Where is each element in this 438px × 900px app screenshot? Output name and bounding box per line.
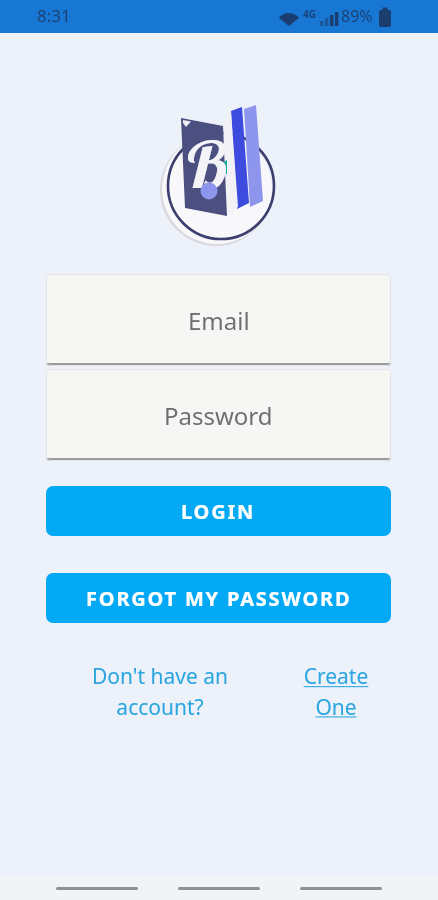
- staticText: 89%: [341, 5, 373, 27]
- button[interactable]: [56, 883, 138, 893]
- button[interactable]: LOGIN: [46, 486, 391, 536]
- staticText: 4G: [303, 7, 316, 21]
- staticText: B: [179, 124, 223, 204]
- button[interactable]: Create One: [291, 662, 381, 721]
- staticText: FORGOT MY PASSWORD: [86, 585, 352, 612]
- staticText: Password: [164, 399, 273, 432]
- staticText: Don't have an account?: [75, 662, 245, 721]
- staticText: 8:31: [37, 4, 71, 27]
- staticText: Create One: [291, 662, 381, 721]
- button[interactable]: [178, 883, 260, 893]
- staticText: LOGIN: [181, 498, 256, 525]
- button[interactable]: [300, 883, 382, 893]
- staticText: Email: [188, 304, 250, 337]
- button[interactable]: FORGOT MY PASSWORD: [46, 573, 391, 623]
- button[interactable]: Password: [46, 369, 391, 461]
- button[interactable]: Email: [46, 274, 391, 366]
